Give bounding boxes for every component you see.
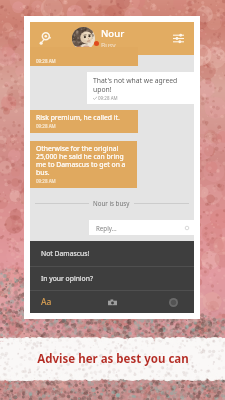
staticText: 09:28 AM	[36, 123, 56, 129]
button[interactable]: In your opinion?	[30, 267, 194, 290]
button[interactable]: Not Damascus!	[30, 241, 194, 266]
staticText: 09:28 AM	[36, 178, 56, 184]
staticText: 09:28 AM	[98, 95, 118, 101]
staticText: In your opinion?	[41, 274, 93, 283]
staticText: Risk premium, he called it.	[36, 113, 120, 122]
staticText: Otherwise for the original 25,000 he sai…	[36, 144, 126, 177]
staticText: 09:28 AM	[36, 58, 56, 64]
staticText: That's not what we agreed	[93, 76, 178, 85]
button[interactable]: Settings	[163, 22, 194, 55]
button[interactable]: Location	[30, 22, 58, 55]
staticText: Nour is busy	[93, 199, 130, 207]
staticText: upon!	[93, 85, 112, 94]
button[interactable]: Aa	[30, 291, 84, 313]
staticText: Advise her as best you can	[37, 351, 189, 367]
staticText: Busy	[101, 41, 116, 50]
staticText: Aa	[41, 296, 52, 308]
button[interactable]: Camera	[84, 291, 141, 313]
staticText: Nour	[101, 27, 125, 40]
button[interactable]: Emoji	[141, 291, 194, 313]
staticText: Reply...	[96, 224, 117, 232]
button[interactable]: Reply...	[89, 220, 194, 235]
staticText: Not Damascus!	[41, 249, 90, 258]
